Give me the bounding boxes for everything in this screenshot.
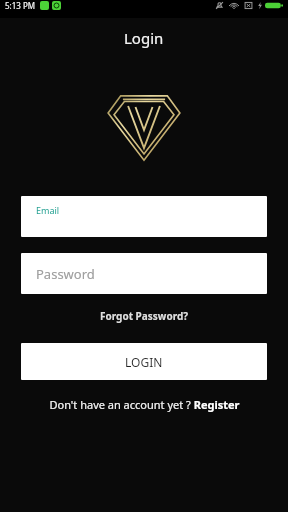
staticText: LOGIN bbox=[125, 354, 163, 370]
button[interactable]: Don't have an account yet ? Register bbox=[43, 394, 246, 415]
staticText: Forgot Password? bbox=[100, 309, 189, 323]
button[interactable]: Forgot Password? bbox=[94, 306, 195, 326]
staticText: Email bbox=[36, 204, 60, 216]
staticText: Don't have an account yet ? Register bbox=[49, 397, 240, 412]
staticText: Login bbox=[124, 28, 164, 48]
staticText: 5:13 PM bbox=[5, 0, 36, 11]
other: App logo bbox=[107, 92, 181, 162]
button[interactable]: Password bbox=[21, 253, 267, 294]
button[interactable]: LOGIN bbox=[21, 343, 267, 380]
staticText: Password bbox=[36, 265, 95, 283]
button[interactable]: Email bbox=[21, 196, 267, 237]
